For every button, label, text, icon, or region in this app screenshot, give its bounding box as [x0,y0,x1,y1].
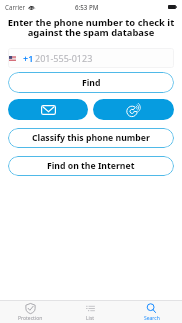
button[interactable]: Protection [0,301,60,323]
staticText: Protection [18,315,43,322]
staticText: Classify this phone number [32,132,150,144]
button[interactable]: Find on the Internet [8,156,174,176]
button[interactable]: Find [8,72,174,93]
staticText: 6:53 PM [75,3,99,11]
staticText: Carrier [5,3,26,11]
button[interactable]: Call [93,99,174,120]
staticText: Search [144,315,160,322]
button[interactable]: List [60,301,121,323]
button[interactable]: Search [121,301,182,323]
button[interactable]: +1 [8,48,174,68]
button[interactable]: Classify this phone number [8,128,174,148]
staticText: +1 [23,52,34,64]
button[interactable]: Send message [8,99,88,120]
staticText: Find on the Internet [47,160,135,172]
staticText: List [86,315,95,322]
staticText: Enter the phone number to check it again… [3,16,179,39]
staticText: Find [82,77,101,89]
staticText: 201-555-0123 [35,52,93,64]
